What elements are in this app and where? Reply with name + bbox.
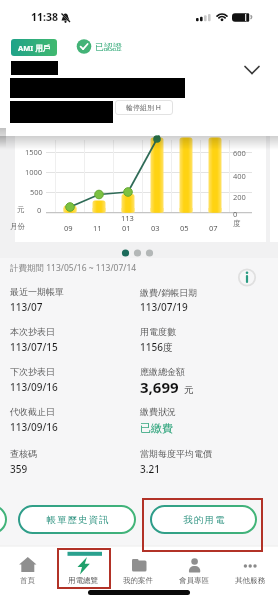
staticText: 113/09/16 [10,380,58,394]
staticText: 1156度 [140,340,173,354]
staticText: 3,699 [140,377,179,397]
staticText: 繳費/銷帳日期 [140,286,198,298]
staticText: 當期每度平均電價 [140,448,212,459]
staticText: 07 [209,223,218,233]
staticText: 度 [233,219,241,228]
button[interactable]: 用電總覽 [55,546,110,592]
staticText: 01 [122,223,131,233]
staticText: 已繳費 [140,421,173,435]
staticText: AMI 用戶 [18,43,51,53]
staticText: 3.21 [140,462,160,476]
staticText: 500 [30,187,43,197]
staticText: 03 [151,223,160,233]
staticText: 帳單歷史資訊 [46,514,109,526]
staticText: 0 [233,209,238,219]
staticText: 最近一期帳單 [10,286,64,297]
staticText: 代收截止日 [10,406,55,417]
staticText: 下次抄表日 [10,366,55,377]
staticText: 繳費狀況 [140,406,176,417]
staticText: 元 [184,384,194,396]
button[interactable]: 會員專區 [166,546,222,592]
staticText: 05 [180,223,189,233]
staticText: 用電度數 [140,326,176,337]
staticText: 113/07/19 [140,300,188,314]
staticText: 400 [233,171,246,181]
staticText: 113/07 [10,300,43,314]
staticText: 元 [17,205,25,214]
button[interactable]: 帳單歷史資訊 [18,505,136,534]
staticText: 應繳總金額 [140,366,185,377]
button[interactable]: 我的用電 [150,505,257,534]
button[interactable]: 首頁 [0,546,55,592]
staticText: 113/09/16 [10,420,58,434]
staticText: 09 [64,223,73,233]
staticText: 輪停組別 H [126,103,162,113]
staticText: 已認證 [95,41,122,52]
staticText: 0 [37,205,42,215]
button[interactable]: AMI 用戶 [11,39,57,56]
staticText: 1500 [25,147,43,157]
staticText: 1000 [25,167,43,177]
button[interactable]: 我的案件 [110,546,166,592]
staticText: 我的案件 [123,576,153,585]
staticText: 200 [233,192,246,202]
staticText: 113 [121,213,134,223]
staticText: 11 [93,223,102,233]
staticText: 11:38 [31,10,58,24]
staticText: 首頁 [20,576,35,585]
staticText: 計費期間 113/05/16 ~ 113/07/14 [10,262,137,274]
staticText: 查核碼 [10,448,37,459]
staticText: 月份 [10,222,25,231]
staticText: 本次抄表日 [10,326,55,337]
staticText: 我的用電 [183,514,225,526]
staticText: 用電總覽 [68,576,98,585]
staticText: 600 [233,148,246,158]
staticText: 359 [10,462,28,476]
button[interactable]: 其他服務 [222,546,278,592]
staticText: 其他服務 [235,576,265,585]
staticText: 113/07/15 [10,340,58,354]
button[interactable]: 輪停組別 H [115,100,173,115]
staticText: 會員專區 [179,576,209,585]
